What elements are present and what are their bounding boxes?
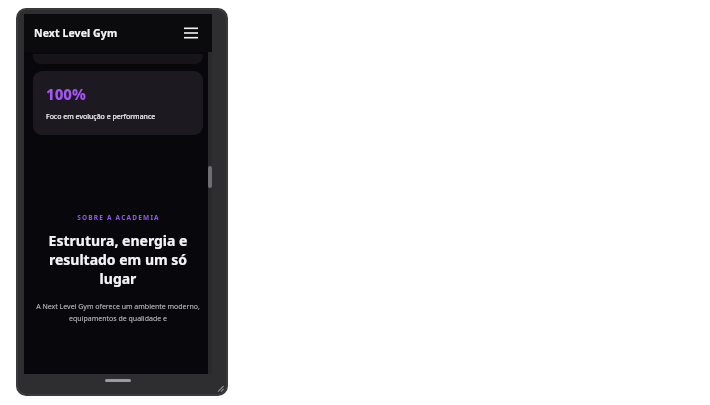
staticText: Estrutura, energia e resultado em um só … (33, 231, 203, 288)
staticText: Next Level Gym (34, 26, 118, 40)
button[interactable]: 100% (33, 71, 203, 135)
button[interactable]: Next Level Gym (34, 26, 118, 40)
button[interactable]: Open menu (180, 22, 202, 44)
staticText: 100% (46, 84, 86, 104)
staticText: SOBRE A ACADEMIA (77, 213, 160, 222)
staticText: Foco em evolução e performance (46, 112, 156, 122)
staticText: A Next Level Gym oferece um ambiente mod… (33, 302, 203, 323)
